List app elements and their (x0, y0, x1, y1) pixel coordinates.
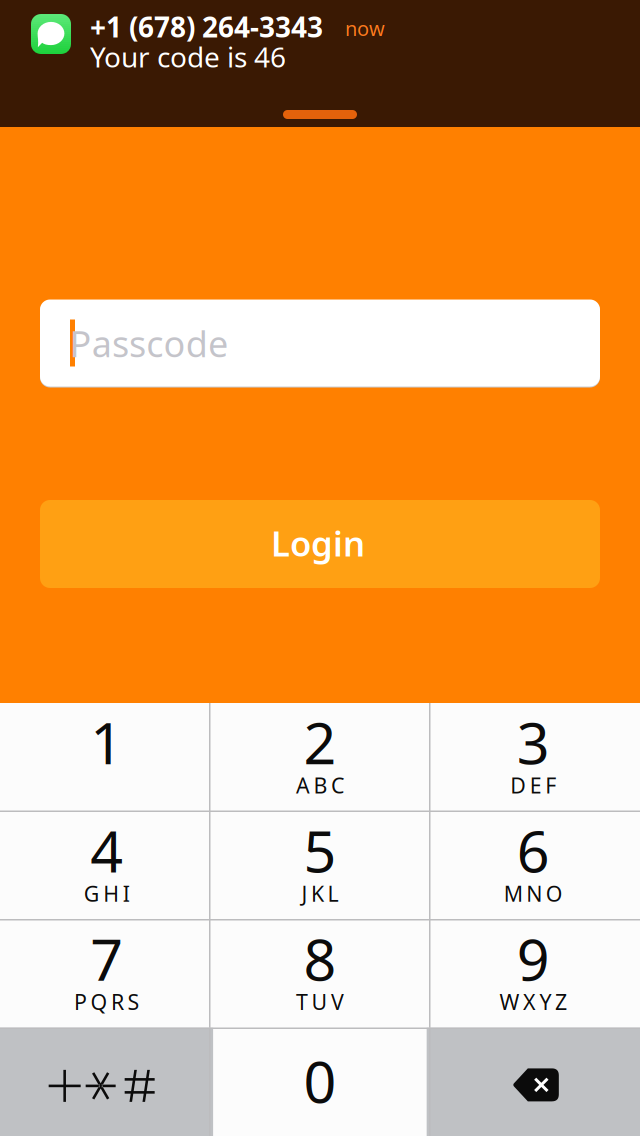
staticText: ABC (296, 771, 344, 799)
staticText: +1 (678) 264-3343 (90, 8, 323, 45)
button[interactable]: 4 (0, 811, 213, 919)
staticText: 3 (517, 704, 550, 780)
button[interactable]: 3 (427, 703, 640, 811)
button[interactable]: Delete (427, 1028, 640, 1136)
staticText: 6 (517, 812, 550, 888)
button[interactable]: 1 (0, 703, 213, 811)
staticText: WXYZ (500, 987, 567, 1016)
staticText: 2 (303, 704, 336, 780)
staticText: GHI (84, 879, 130, 907)
button[interactable]: 9 (427, 919, 640, 1028)
button[interactable]: Login (40, 500, 600, 588)
staticText: DEF (510, 771, 556, 799)
staticText: 0 (303, 1043, 336, 1119)
staticText: Passcode (69, 319, 228, 367)
staticText: 8 (303, 920, 336, 997)
staticText: Your code is 46 (90, 38, 286, 75)
staticText: 9 (517, 920, 550, 997)
button[interactable]: 8 (213, 919, 427, 1028)
staticText: Login (271, 520, 365, 566)
staticText: 1 (90, 704, 123, 780)
staticText: now (345, 15, 385, 42)
staticText: MNO (504, 879, 563, 907)
staticText: 7 (90, 920, 123, 997)
button[interactable]: 2 (213, 703, 427, 811)
staticText: TUV (296, 987, 344, 1016)
staticText: PQRS (74, 987, 139, 1016)
button[interactable]: 5 (213, 811, 427, 919)
staticText: 4 (90, 812, 123, 888)
button[interactable]: 7 (0, 919, 213, 1028)
staticText: 5 (303, 812, 336, 888)
button[interactable]: 6 (427, 811, 640, 919)
staticText: JKL (301, 879, 338, 907)
button[interactable]: 0 (213, 1028, 427, 1136)
button[interactable]: Symbols (0, 1028, 213, 1136)
